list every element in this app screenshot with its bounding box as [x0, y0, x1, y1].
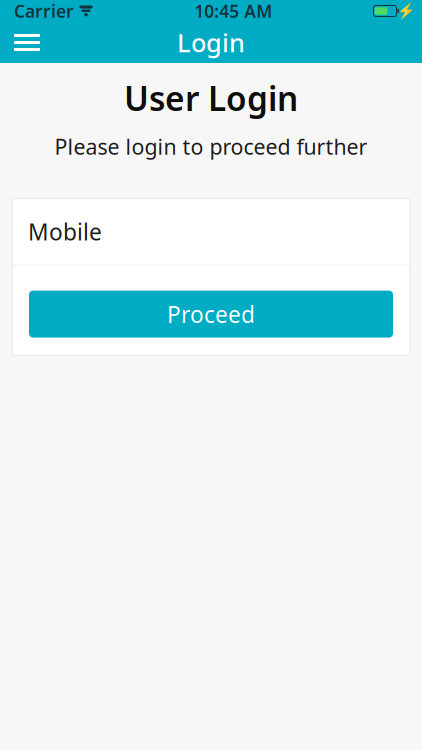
button[interactable]: Menu — [5, 22, 49, 63]
staticText: Carrier — [14, 0, 74, 22]
staticText: Mobile — [28, 216, 102, 247]
staticText: User Login — [124, 76, 298, 120]
staticText: Login — [177, 26, 245, 59]
staticText: Please login to proceed further — [54, 132, 367, 161]
staticText: 10:45 AM — [194, 0, 272, 22]
button[interactable]: Mobile — [12, 199, 410, 265]
staticText: ⚡ — [397, 3, 415, 19]
staticText: Proceed — [167, 299, 255, 329]
button[interactable]: Proceed — [29, 291, 393, 338]
